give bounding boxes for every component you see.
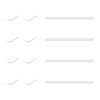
button[interactable]: Row (7, 14, 100, 22)
button[interactable]: Row (7, 57, 100, 65)
button[interactable]: Row (7, 78, 100, 86)
button[interactable]: Row (7, 36, 100, 44)
